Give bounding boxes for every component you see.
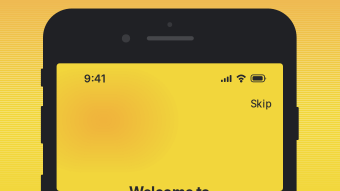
staticText: Welcome to [129, 183, 210, 191]
staticText: 9:41 [84, 72, 106, 85]
staticText: Skip [251, 98, 272, 110]
button[interactable]: Skip [241, 95, 281, 113]
